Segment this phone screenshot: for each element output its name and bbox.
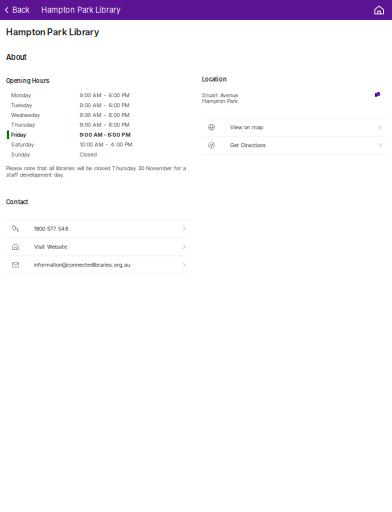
staticText: Please note that all libraries will be c… <box>6 165 186 178</box>
button[interactable]: Get Directions <box>202 137 386 155</box>
staticText: Friday <box>11 131 26 138</box>
staticText: information@connectedlibraries.org.au <box>34 261 130 268</box>
staticText: 9:00 AM - 6:00 PM <box>79 92 129 99</box>
staticText: 9:00 AM - 6:00 PM <box>79 102 129 108</box>
staticText: Hampton Park <box>202 98 238 104</box>
staticText: Saturday <box>11 141 34 148</box>
staticText: 9:00 AM - 8:00 PM <box>79 112 129 118</box>
staticText: 9:00 AM - 6:00 PM <box>79 131 130 138</box>
staticText: View on map <box>230 124 263 131</box>
staticText: 10:00 AM - 4:00 PM <box>79 141 132 148</box>
staticText: Visit Website <box>34 243 67 250</box>
staticText: 1800 577 548 <box>34 225 68 232</box>
staticText: Monday <box>11 92 31 99</box>
staticText: Get Directions <box>230 142 266 149</box>
staticText: Closed <box>79 151 96 158</box>
button[interactable]: Back <box>0 0 33 20</box>
button[interactable]: Visit Website <box>6 238 190 256</box>
button[interactable]: 1800 577 548 <box>6 220 190 238</box>
button[interactable]: information@connectedlibraries.org.au <box>6 256 190 274</box>
staticText: Hampton Park Library <box>6 26 99 37</box>
staticText: 9:00 AM - 8:00 PM <box>79 122 129 128</box>
staticText: Location <box>202 76 227 83</box>
staticText: Wednesday <box>11 112 40 118</box>
staticText: Stuart Avenue <box>202 92 238 98</box>
button[interactable]: View on map <box>202 119 386 137</box>
staticText: Tuesday <box>11 102 32 108</box>
button[interactable]: Home <box>366 0 392 20</box>
staticText: Sunday <box>11 151 30 158</box>
staticText: Contact <box>6 199 28 206</box>
staticText: Hampton Park Library <box>41 5 120 15</box>
staticText: About <box>6 53 27 62</box>
staticText: Opening Hours <box>6 77 49 84</box>
staticText: Back <box>12 5 29 15</box>
staticText: Thursday <box>11 122 35 128</box>
